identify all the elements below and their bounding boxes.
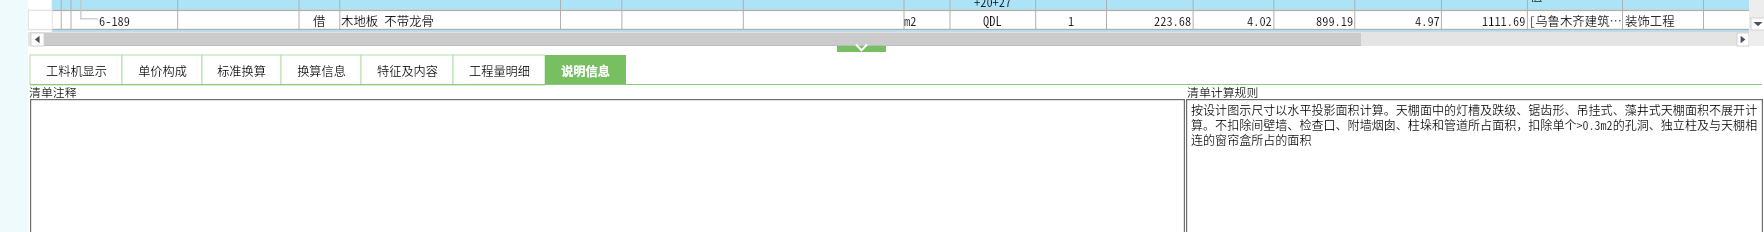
staticText: 4.97	[1415, 12, 1440, 30]
staticText: 223.68	[1154, 12, 1192, 30]
staticText: 清单注释	[29, 83, 77, 100]
button[interactable]: 说明信息	[545, 55, 626, 85]
staticText: 工料机显示	[46, 62, 107, 80]
button[interactable]: Scroll left	[31, 33, 44, 46]
button[interactable]: 工料机显示	[30, 55, 122, 85]
staticText: 1	[1068, 12, 1075, 30]
staticText: +20+27	[974, 0, 1012, 11]
staticText: 说明信息	[561, 62, 610, 80]
staticText: m2	[904, 12, 917, 30]
button[interactable]: 特征及内容	[361, 55, 453, 85]
button[interactable]: 换算信息	[281, 55, 361, 85]
staticText: 6-189	[99, 12, 130, 30]
staticText: 换算信息	[297, 62, 346, 80]
button[interactable]: 单价构成	[122, 55, 202, 85]
button[interactable]: 工程量明细	[453, 55, 545, 85]
staticText: 借	[313, 12, 326, 30]
staticText: 值	[1530, 0, 1543, 5]
button[interactable]: Scroll right	[1737, 33, 1749, 46]
staticText: 899.19	[1316, 12, 1354, 30]
staticText: 工程量明细	[469, 62, 530, 80]
button[interactable]: 标准换算	[202, 55, 281, 85]
staticText: QDL	[983, 12, 1002, 30]
staticText: 木地板 不带龙骨	[341, 12, 434, 30]
button[interactable]: Collapse panel	[837, 46, 886, 52]
staticText: 清单计算规则	[1187, 83, 1259, 100]
staticText: 1111.69	[1482, 12, 1526, 30]
staticText: [乌鲁木齐建筑…	[1529, 12, 1622, 30]
staticText: 装饰工程	[1625, 12, 1675, 30]
staticText: 4.02	[1247, 12, 1272, 30]
staticText: 特征及内容	[377, 62, 438, 80]
staticText: 按设计图示尺寸以水平投影面积计算。天棚面中的灯槽及跌级、锯齿形、吊挂式、藻井式天…	[1191, 101, 1762, 148]
staticText: 单价构成	[138, 62, 187, 80]
staticText: 标准换算	[217, 62, 266, 80]
button[interactable]: Scroll down	[1751, 18, 1764, 30]
